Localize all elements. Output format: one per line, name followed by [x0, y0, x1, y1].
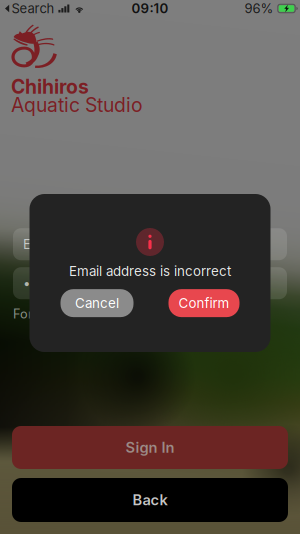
- staticText: • • • • • • • •: [23, 275, 115, 291]
- button[interactable]: Confirm: [168, 289, 239, 317]
- button[interactable]: Back: [12, 478, 288, 522]
- staticText: Chihiros: [11, 75, 89, 98]
- staticText: Back: [132, 491, 167, 509]
- staticText: 09:10: [131, 0, 168, 16]
- staticText: Email: [23, 236, 56, 252]
- staticText: Search: [11, 1, 54, 16]
- button[interactable]: Forgot password?: [13, 306, 287, 321]
- button[interactable]: Sign In: [12, 426, 288, 469]
- staticText: Forgot password?: [13, 306, 123, 321]
- button[interactable]: Cancel: [60, 289, 133, 317]
- staticText: Sign In: [125, 439, 174, 456]
- staticText: Confirm: [178, 295, 229, 311]
- staticText: Aquatic Studio: [11, 93, 143, 117]
- staticText: Cancel: [75, 295, 119, 311]
- staticText: 96%: [244, 1, 273, 16]
- staticText: Email address is incorrect: [69, 263, 231, 279]
